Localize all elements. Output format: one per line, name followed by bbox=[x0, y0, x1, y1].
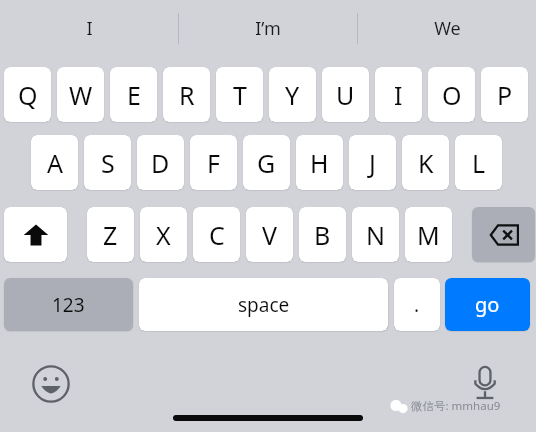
staticText: L bbox=[472, 146, 486, 180]
button[interactable]: R bbox=[163, 67, 210, 122]
staticText: C bbox=[209, 218, 225, 252]
staticText: 微信号: mmhau9 bbox=[411, 398, 501, 414]
staticText: O bbox=[442, 78, 462, 112]
staticText: M bbox=[417, 218, 440, 252]
button[interactable]: U bbox=[322, 67, 369, 122]
button[interactable]: X bbox=[140, 207, 187, 262]
staticText: space bbox=[238, 292, 290, 318]
staticText: T bbox=[233, 78, 247, 112]
staticText: H bbox=[310, 146, 329, 180]
button[interactable]: I’m bbox=[179, 0, 357, 56]
staticText: Y bbox=[285, 78, 300, 112]
button[interactable]: G bbox=[243, 135, 290, 190]
staticText: B bbox=[314, 218, 331, 252]
button[interactable]: S bbox=[84, 135, 131, 190]
staticText: 123 bbox=[52, 292, 85, 318]
staticText: Q bbox=[18, 78, 38, 112]
staticText: V bbox=[262, 218, 278, 252]
button[interactable]: Shift bbox=[4, 207, 67, 262]
button[interactable]: space bbox=[139, 278, 388, 331]
button[interactable]: 123 bbox=[4, 278, 133, 331]
button[interactable]: W bbox=[57, 67, 104, 122]
staticText: I’m bbox=[255, 16, 281, 41]
staticText: N bbox=[366, 218, 386, 252]
button[interactable]: H bbox=[296, 135, 343, 190]
button[interactable]: K bbox=[402, 135, 449, 190]
button[interactable]: Emoji keyboard bbox=[30, 363, 72, 405]
staticText: We bbox=[434, 16, 461, 41]
staticText: J bbox=[369, 146, 376, 180]
button[interactable]: I bbox=[0, 0, 178, 56]
button[interactable]: D bbox=[137, 135, 184, 190]
staticText: R bbox=[179, 78, 195, 112]
button[interactable]: N bbox=[352, 207, 399, 262]
button[interactable]: A bbox=[31, 135, 78, 190]
button[interactable]: Z bbox=[87, 207, 134, 262]
button[interactable]: B bbox=[299, 207, 346, 262]
button[interactable]: C bbox=[193, 207, 240, 262]
button[interactable]: Dictation bbox=[464, 361, 506, 403]
staticText: I bbox=[394, 78, 403, 112]
staticText: go bbox=[475, 291, 500, 318]
button[interactable]: P bbox=[481, 67, 528, 122]
button[interactable]: Backspace bbox=[472, 207, 535, 262]
button[interactable]: F bbox=[190, 135, 237, 190]
staticText: G bbox=[257, 146, 276, 180]
staticText: W bbox=[69, 78, 93, 112]
button[interactable]: Q bbox=[4, 67, 51, 122]
staticText: F bbox=[207, 146, 220, 180]
button[interactable]: O bbox=[428, 67, 475, 122]
button[interactable]: M bbox=[405, 207, 452, 262]
button[interactable]: E bbox=[110, 67, 157, 122]
button[interactable]: T bbox=[216, 67, 263, 122]
button[interactable]: I bbox=[375, 67, 422, 122]
staticText: X bbox=[156, 218, 171, 252]
staticText: K bbox=[418, 146, 434, 180]
staticText: Z bbox=[103, 218, 118, 252]
button[interactable]: L bbox=[455, 135, 502, 190]
button[interactable]: J bbox=[349, 135, 396, 190]
button[interactable]: V bbox=[246, 207, 293, 262]
button[interactable]: Y bbox=[269, 67, 316, 122]
staticText: S bbox=[101, 146, 115, 180]
staticText: . bbox=[414, 292, 420, 318]
staticText: A bbox=[47, 146, 63, 180]
button[interactable]: go bbox=[445, 278, 530, 331]
staticText: P bbox=[497, 78, 513, 112]
button[interactable]: We bbox=[358, 0, 536, 56]
staticText: I bbox=[86, 16, 93, 41]
button[interactable]: . bbox=[394, 278, 440, 331]
staticText: U bbox=[336, 78, 355, 112]
staticText: E bbox=[127, 78, 141, 112]
staticText: D bbox=[151, 146, 170, 180]
